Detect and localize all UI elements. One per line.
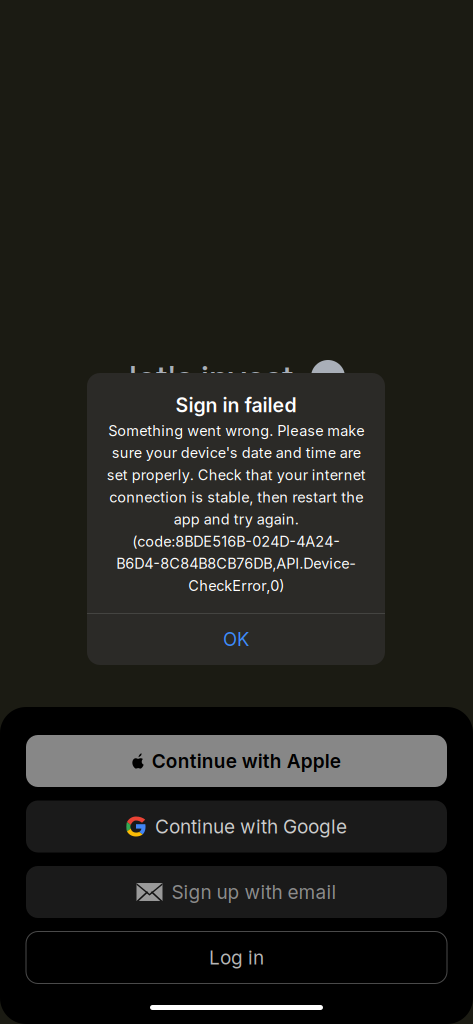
button[interactable]: Continue with Apple (26, 735, 447, 787)
staticText: Sign up with email (171, 880, 336, 903)
staticText: let's invest (129, 357, 293, 398)
button[interactable]: Continue with Google (26, 800, 447, 852)
button[interactable]: Sign up with email (26, 866, 447, 918)
staticText: Continue with Google (155, 815, 347, 838)
button[interactable]: OK (87, 614, 385, 665)
staticText: Something went wrong. Please make sure y… (106, 422, 365, 594)
staticText: Log in (209, 946, 264, 969)
staticText: Continue with Apple (152, 749, 341, 772)
staticText: Sign in failed (175, 393, 296, 417)
staticText: OK (223, 628, 249, 650)
button[interactable]: Log in (26, 931, 447, 983)
